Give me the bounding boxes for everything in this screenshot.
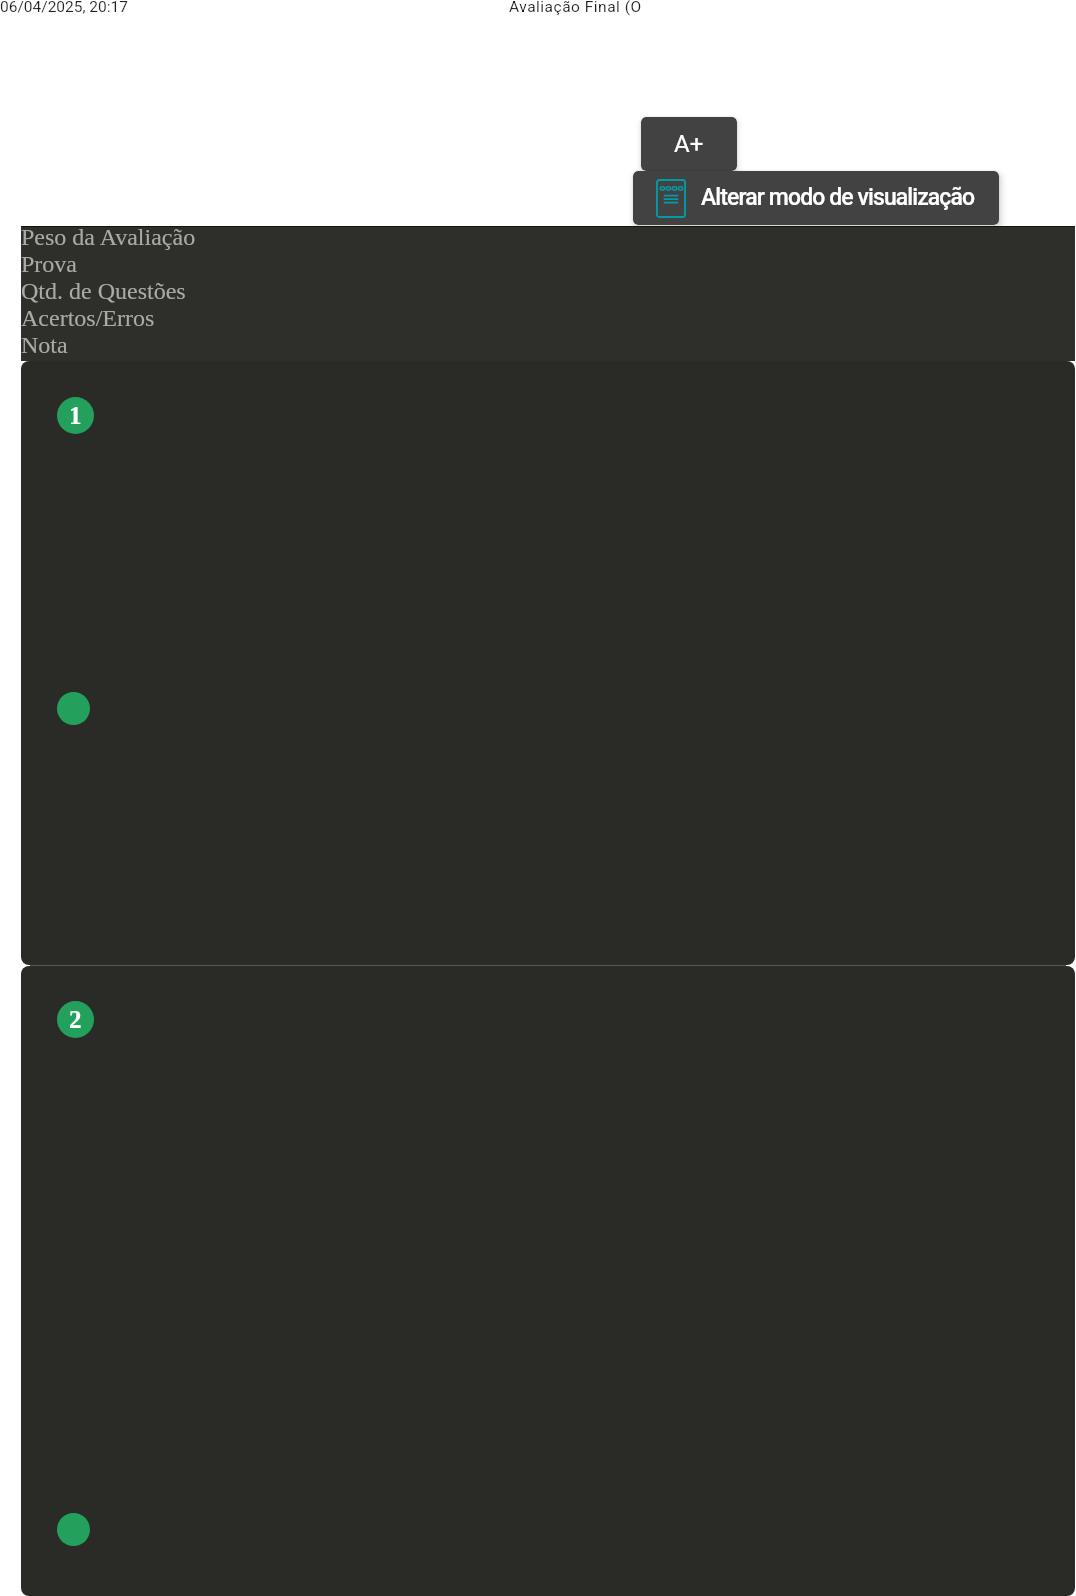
button[interactable]: Alterar modo de visualização: [633, 171, 999, 225]
staticText: 1: [69, 402, 82, 430]
staticText: A+: [674, 130, 704, 158]
other: Alterar modo de visualização: [656, 179, 686, 218]
staticText: Qtd. de Questões: [21, 278, 186, 305]
staticText: Nota: [21, 332, 68, 359]
button[interactable]: 1: [21, 361, 1075, 965]
staticText: Alterar modo de visualização: [701, 184, 975, 211]
staticText: Prova: [21, 251, 77, 278]
staticText: Avaliação Final (O: [509, 0, 642, 16]
staticText: Peso da Avaliação: [21, 224, 196, 251]
staticText: Acertos/Erros: [21, 305, 155, 332]
staticText: 2: [69, 1006, 82, 1034]
button[interactable]: A+: [641, 117, 737, 171]
button[interactable]: 2: [21, 966, 1075, 1596]
staticText: 06/04/2025, 20:17: [0, 0, 128, 16]
